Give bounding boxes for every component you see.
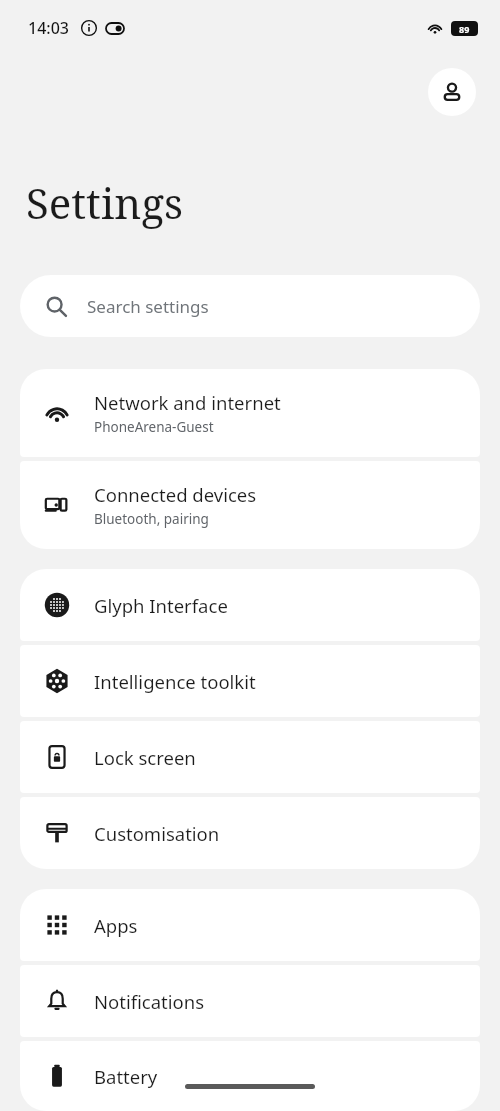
staticText: Customisation: [94, 821, 220, 846]
button[interactable]: Glyph Interface: [20, 569, 480, 641]
staticText: Battery: [94, 1064, 158, 1089]
button[interactable]: Intelligence toolkit: [20, 645, 480, 717]
button[interactable]: Apps: [20, 889, 480, 961]
staticText: PhoneArena-Guest: [94, 418, 214, 436]
staticText: Notifications: [94, 989, 205, 1014]
staticText: Search settings: [87, 295, 209, 318]
button[interactable]: Network and internet: [20, 369, 480, 457]
button[interactable]: Notifications: [20, 965, 480, 1037]
button[interactable]: Customisation: [20, 797, 480, 869]
staticText: Lock screen: [94, 745, 196, 770]
staticText: 89: [459, 23, 470, 35]
button[interactable]: Battery: [20, 1041, 480, 1111]
staticText: Connected devices: [94, 482, 257, 507]
staticText: Apps: [94, 913, 138, 938]
staticText: Intelligence toolkit: [94, 669, 256, 694]
staticText: Glyph Interface: [94, 593, 228, 618]
button[interactable]: Account: [428, 68, 476, 116]
button[interactable]: Connected devices: [20, 461, 480, 549]
staticText: Settings: [26, 174, 183, 231]
staticText: Bluetooth, pairing: [94, 510, 209, 528]
staticText: Network and internet: [94, 390, 281, 415]
button[interactable]: Lock screen: [20, 721, 480, 793]
staticText: 14:03: [28, 17, 69, 39]
button[interactable]: Search settings: [20, 275, 480, 337]
